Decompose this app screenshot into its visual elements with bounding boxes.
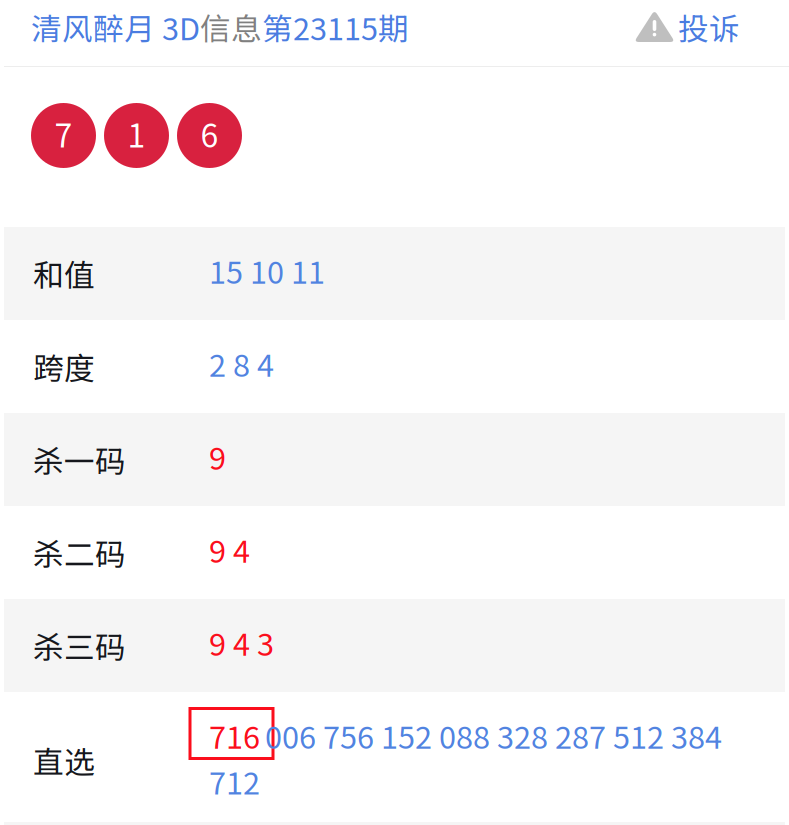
staticText: 信息 bbox=[200, 5, 262, 49]
staticText: 杀二码 bbox=[33, 530, 126, 575]
staticText: 跨度 bbox=[33, 344, 95, 389]
staticText: 清风醉月 3D bbox=[31, 5, 200, 49]
staticText: 15 10 11 bbox=[209, 248, 325, 293]
staticText: 9 bbox=[209, 434, 226, 479]
staticText: 9 4 bbox=[209, 527, 250, 572]
staticText: 第23115期 bbox=[262, 5, 409, 49]
staticText: 杀一码 bbox=[33, 437, 126, 482]
staticText: 和值 bbox=[33, 251, 95, 296]
staticText: 716 bbox=[209, 713, 260, 758]
staticText: 6 bbox=[200, 110, 218, 157]
staticText: 9 4 3 bbox=[209, 620, 274, 665]
staticText: 2 8 4 bbox=[209, 341, 274, 386]
staticText: 1 bbox=[127, 110, 145, 157]
button[interactable]: 投诉 bbox=[634, 5, 789, 49]
staticText: 006 756 152 088 328 287 512 384 bbox=[265, 713, 722, 758]
staticText: 712 bbox=[209, 759, 260, 803]
staticText: 杀三码 bbox=[33, 623, 126, 668]
staticText: 投诉 bbox=[678, 5, 740, 49]
staticText: 7 bbox=[54, 110, 72, 157]
staticText: 直选 bbox=[33, 738, 95, 782]
